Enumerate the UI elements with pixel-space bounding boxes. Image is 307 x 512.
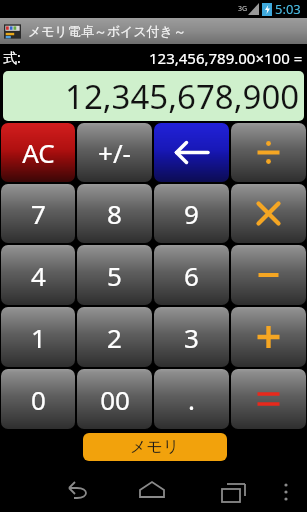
staticText: 式: bbox=[3, 48, 21, 67]
button[interactable]: Add bbox=[231, 307, 306, 367]
button[interactable]: 1 bbox=[1, 307, 75, 367]
staticText: 12,345,678,900 bbox=[65, 74, 300, 119]
button[interactable]: 4 bbox=[1, 245, 75, 305]
button[interactable]: Divide bbox=[231, 123, 306, 182]
button[interactable]: Backspace bbox=[154, 123, 229, 182]
staticText: 5 bbox=[107, 258, 122, 293]
staticText: 1 bbox=[31, 320, 46, 355]
button[interactable]: 12,345,678,900 bbox=[3, 71, 304, 121]
staticText: 4 bbox=[31, 258, 46, 293]
button[interactable]: More options bbox=[273, 479, 299, 505]
button[interactable]: 00 bbox=[77, 369, 152, 429]
staticText: 3 bbox=[184, 320, 199, 355]
staticText: メモリ電卓～ボイス付き～ bbox=[28, 23, 187, 39]
staticText: . bbox=[188, 382, 195, 417]
staticText: 00 bbox=[100, 382, 130, 417]
staticText: 9 bbox=[184, 196, 199, 231]
button[interactable]: 3 bbox=[154, 307, 229, 367]
button[interactable]: 6 bbox=[154, 245, 229, 305]
button[interactable]: +/- bbox=[77, 123, 152, 182]
staticText: +/- bbox=[98, 135, 131, 170]
button[interactable]: Home bbox=[135, 475, 169, 509]
button[interactable]: Recents bbox=[216, 475, 250, 509]
staticText: 8 bbox=[107, 196, 122, 231]
button[interactable]: Subtract bbox=[231, 245, 306, 305]
button[interactable]: 2 bbox=[77, 307, 152, 367]
staticText: 6 bbox=[184, 258, 199, 293]
staticText: 3G bbox=[238, 4, 248, 14]
staticText: 123,456,789.00×100 = bbox=[149, 48, 303, 68]
button[interactable]: AC bbox=[1, 123, 75, 182]
staticText: メモリ bbox=[130, 437, 180, 457]
staticText: 2 bbox=[107, 320, 122, 355]
staticText: AC bbox=[22, 135, 55, 170]
button[interactable]: 9 bbox=[154, 184, 229, 243]
button[interactable]: 0 bbox=[1, 369, 75, 429]
button[interactable]: 5 bbox=[77, 245, 152, 305]
staticText: 0 bbox=[31, 382, 46, 417]
button[interactable]: メモリ bbox=[83, 433, 227, 461]
button[interactable]: Back bbox=[63, 475, 97, 509]
staticText: 5:03 bbox=[275, 0, 301, 18]
button[interactable]: 7 bbox=[1, 184, 75, 243]
button[interactable]: Multiply bbox=[231, 184, 306, 243]
button[interactable]: 8 bbox=[77, 184, 152, 243]
staticText: 7 bbox=[31, 196, 46, 231]
button[interactable]: Equals bbox=[231, 369, 306, 429]
button[interactable]: . bbox=[154, 369, 229, 429]
